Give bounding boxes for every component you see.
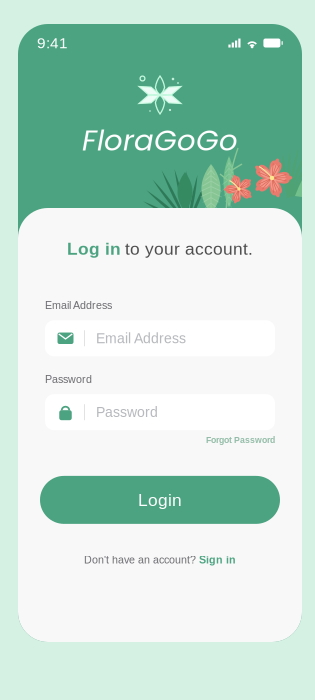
button[interactable]: Password: [45, 394, 275, 430]
staticText: Forgot Password: [206, 435, 275, 445]
staticText: Email Address: [45, 299, 112, 311]
button[interactable]: Email Address: [45, 320, 275, 356]
staticText: to your account.: [125, 239, 253, 258]
staticText: Password: [96, 404, 158, 420]
staticText: Don't have an account?: [84, 554, 196, 566]
button[interactable]: Login: [40, 476, 280, 524]
staticText: Login: [138, 490, 182, 510]
staticText: 9:41: [37, 34, 68, 51]
button[interactable]: Forgot Password: [206, 435, 275, 445]
staticText: Password: [45, 373, 92, 385]
staticText: Sign in: [199, 554, 236, 566]
staticText: Log in: [67, 239, 121, 258]
staticText: Email Address: [96, 330, 186, 346]
staticText: FloraGoGo: [82, 120, 238, 161]
button[interactable]: Sign in: [199, 554, 236, 566]
